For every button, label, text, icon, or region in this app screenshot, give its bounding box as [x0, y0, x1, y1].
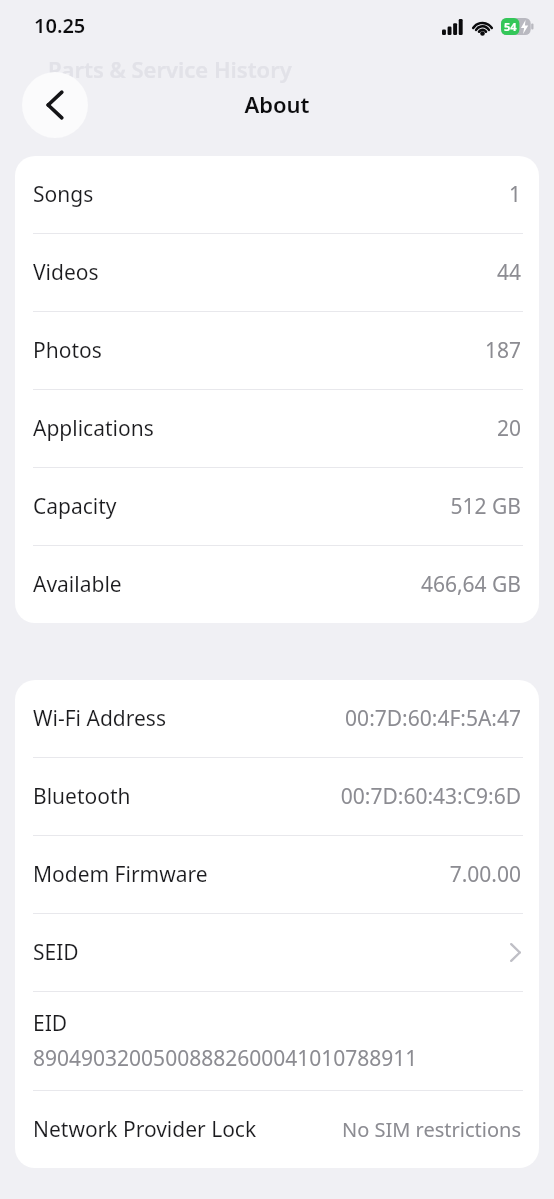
button[interactable]: Videos: [15, 234, 539, 311]
staticText: No SIM restrictions: [342, 1116, 521, 1143]
button[interactable]: Back: [22, 72, 88, 138]
staticText: About: [244, 89, 310, 119]
button[interactable]: Applications: [15, 390, 539, 467]
staticText: Photos: [33, 336, 102, 365]
staticText: 44: [496, 258, 521, 287]
staticText: Videos: [33, 258, 99, 287]
staticText: Available: [33, 570, 122, 599]
staticText: 466,64 GB: [420, 570, 521, 599]
staticText: 89049032005008882600041010788911: [33, 1044, 418, 1073]
button[interactable]: SEID: [15, 914, 539, 991]
button[interactable]: Wi-Fi Address: [15, 680, 539, 757]
button[interactable]: Bluetooth: [15, 758, 539, 835]
staticText: EID: [33, 1009, 68, 1038]
staticText: 10.25: [34, 12, 86, 39]
staticText: Parts & Service History: [48, 54, 292, 84]
staticText: 7.00.00: [449, 860, 521, 889]
staticText: Applications: [33, 414, 154, 443]
staticText: Modem Firmware: [33, 860, 208, 889]
staticText: SEID: [33, 938, 79, 967]
button[interactable]: Photos: [15, 312, 539, 389]
button[interactable]: Songs: [15, 156, 539, 233]
staticText: 512 GB: [450, 492, 521, 521]
staticText: Network Provider Lock: [33, 1115, 257, 1144]
button[interactable]: Available: [15, 546, 539, 623]
staticText: 187: [484, 336, 521, 365]
staticText: 00:7D:60:43:C9:6D: [340, 782, 521, 811]
button[interactable]: EID: [15, 992, 539, 1090]
staticText: Wi-Fi Address: [33, 704, 166, 733]
staticText: Bluetooth: [33, 782, 131, 811]
button[interactable]: Modem Firmware: [15, 836, 539, 913]
button[interactable]: Network Provider Lock: [15, 1091, 539, 1168]
staticText: 20: [496, 414, 521, 443]
staticText: 54: [504, 19, 517, 34]
staticText: Songs: [33, 180, 94, 209]
staticText: 00:7D:60:4F:5A:47: [345, 704, 521, 733]
button[interactable]: Capacity: [15, 468, 539, 545]
staticText: 1: [508, 180, 521, 209]
staticText: Capacity: [33, 492, 117, 521]
